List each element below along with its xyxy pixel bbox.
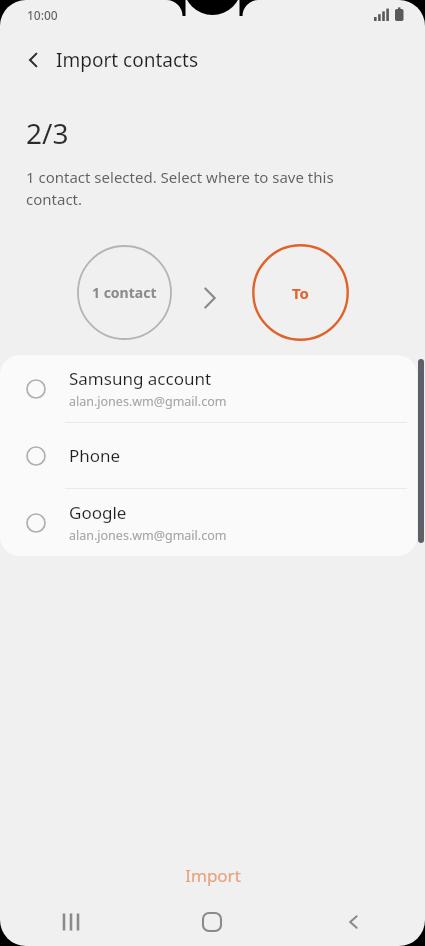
staticText: Samsung account: [69, 367, 212, 390]
button[interactable]: Import: [0, 852, 425, 898]
staticText: 2/3: [26, 114, 69, 152]
staticText: Import contacts: [56, 47, 198, 73]
button[interactable]: Back: [14, 40, 54, 80]
staticText: 1 contact: [92, 283, 157, 302]
staticText: Phone: [69, 444, 121, 467]
staticText: 10:00: [27, 7, 58, 23]
button[interactable]: To: [252, 244, 349, 341]
button[interactable]: Google: [0, 489, 417, 556]
staticText: alan.jones.wm@gmail.com: [69, 527, 227, 544]
button[interactable]: Phone: [0, 423, 417, 488]
staticText: Google: [69, 501, 127, 524]
button[interactable]: Back: [283, 898, 425, 946]
staticText: alan.jones.wm@gmail.com: [69, 393, 227, 410]
button[interactable]: 1 contact: [77, 245, 172, 340]
button[interactable]: Samsung account: [0, 355, 417, 422]
staticText: Import: [185, 864, 241, 887]
staticText: 1 contact selected. Select where to save…: [26, 167, 383, 210]
button[interactable]: Home: [141, 898, 283, 946]
button[interactable]: Recents: [0, 898, 141, 946]
staticText: To: [292, 283, 309, 303]
